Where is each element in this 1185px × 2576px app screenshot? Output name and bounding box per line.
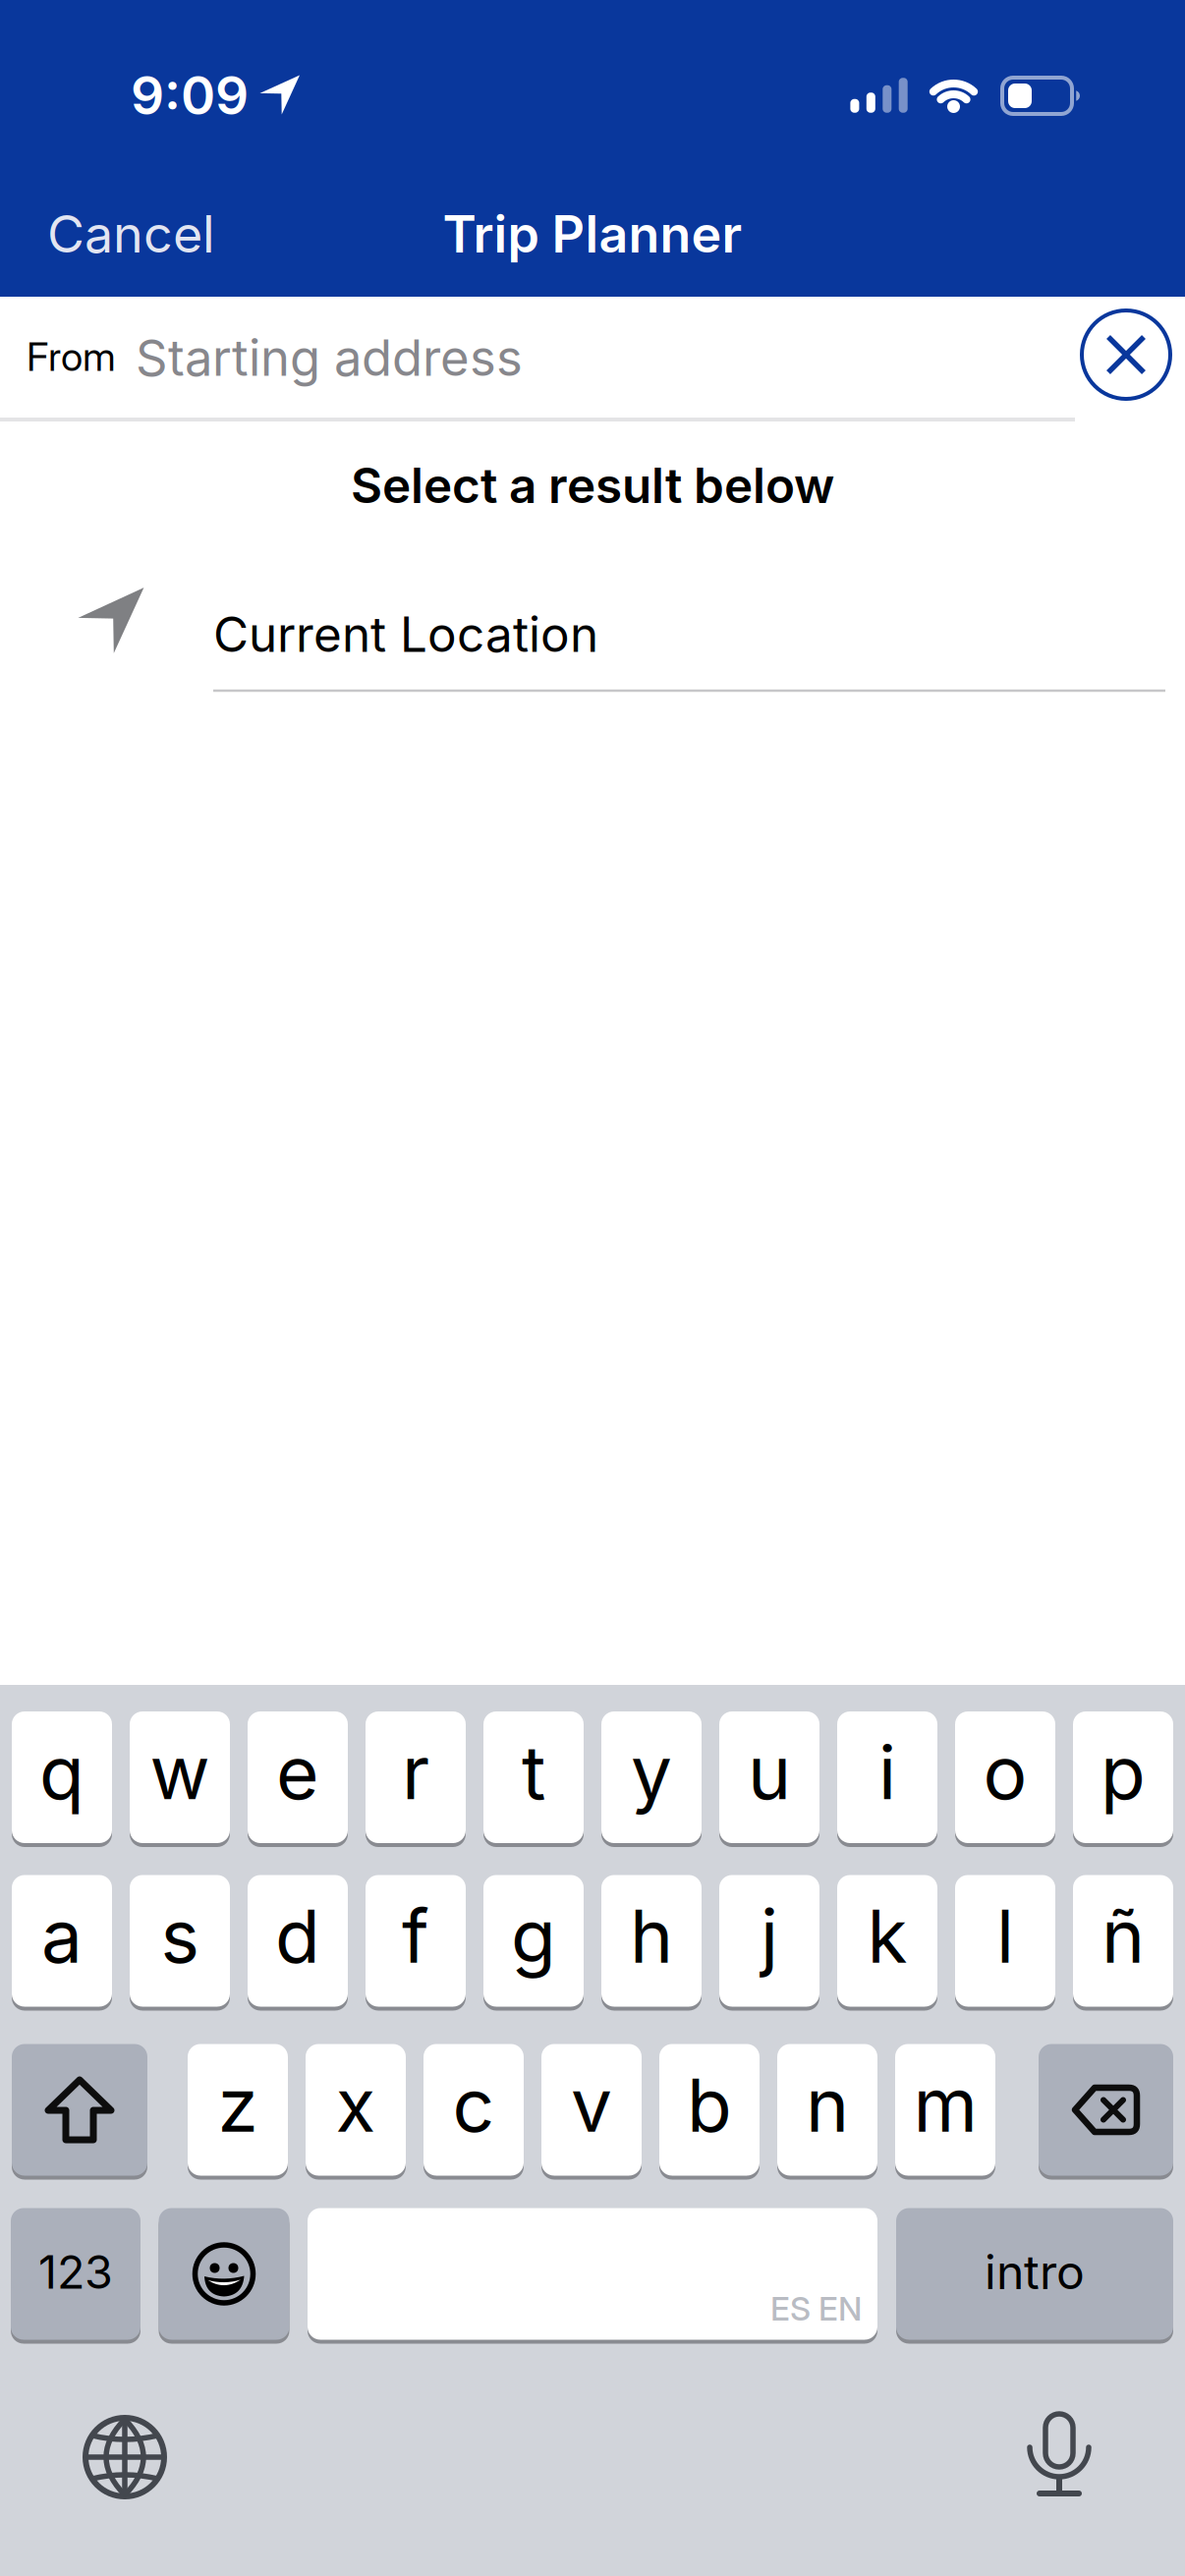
- staticText: a: [41, 1893, 83, 1979]
- staticText: s: [161, 1893, 199, 1979]
- button[interactable]: y: [601, 1711, 702, 1847]
- button[interactable]: e: [248, 1711, 348, 1847]
- staticText: y: [631, 1729, 672, 1816]
- button[interactable]: Shift: [12, 2044, 147, 2180]
- staticText: m: [913, 2062, 977, 2148]
- staticText: f: [402, 1893, 429, 1979]
- staticText: Starting address: [136, 328, 523, 387]
- button[interactable]: Current Location: [0, 560, 1185, 681]
- button[interactable]: p: [1073, 1711, 1173, 1847]
- button[interactable]: x: [306, 2044, 406, 2180]
- staticText: b: [687, 2062, 732, 2148]
- staticText: r: [402, 1729, 429, 1816]
- staticText: Current Location: [213, 606, 598, 663]
- button[interactable]: i: [837, 1711, 937, 1847]
- button[interactable]: h: [601, 1875, 702, 2011]
- button[interactable]: c: [423, 2044, 524, 2180]
- staticText: Trip Planner: [443, 204, 742, 264]
- button[interactable]: v: [541, 2044, 642, 2180]
- button[interactable]: k: [837, 1875, 937, 2011]
- staticText: d: [275, 1893, 320, 1979]
- button[interactable]: 123: [11, 2208, 141, 2344]
- staticText: Cancel: [47, 204, 215, 264]
- button[interactable]: From: [0, 297, 1061, 419]
- staticText: q: [39, 1729, 85, 1816]
- button[interactable]: w: [130, 1711, 230, 1847]
- button[interactable]: j: [719, 1875, 819, 2011]
- staticText: ñ: [1101, 1893, 1145, 1979]
- staticText: h: [630, 1893, 673, 1979]
- button[interactable]: Dictate: [1000, 2396, 1118, 2514]
- staticText: l: [996, 1893, 1014, 1979]
- button[interactable]: s: [130, 1875, 230, 2011]
- staticText: o: [983, 1729, 1027, 1816]
- staticText: ES EN: [770, 2289, 862, 2328]
- staticText: e: [276, 1729, 319, 1816]
- button[interactable]: g: [483, 1875, 584, 2011]
- staticText: 123: [38, 2245, 113, 2299]
- button[interactable]: n: [777, 2044, 877, 2180]
- button[interactable]: Next keyboard: [66, 2398, 184, 2516]
- button[interactable]: r: [366, 1711, 466, 1847]
- staticText: 9:09: [131, 64, 249, 126]
- staticText: g: [511, 1893, 556, 1979]
- staticText: w: [150, 1729, 210, 1816]
- button[interactable]: b: [659, 2044, 760, 2180]
- button[interactable]: Delete: [1039, 2044, 1173, 2180]
- button[interactable]: o: [955, 1711, 1055, 1847]
- staticText: t: [522, 1729, 545, 1816]
- staticText: v: [571, 2062, 612, 2148]
- button[interactable]: Clear text: [1077, 306, 1175, 404]
- staticText: k: [867, 1893, 907, 1979]
- button[interactable]: intro: [896, 2208, 1173, 2344]
- staticText: intro: [985, 2244, 1085, 2300]
- button[interactable]: m: [895, 2044, 995, 2180]
- button[interactable]: ñ: [1073, 1875, 1173, 2011]
- button[interactable]: d: [248, 1875, 348, 2011]
- staticText: c: [452, 2062, 495, 2148]
- button[interactable]: a: [12, 1875, 112, 2011]
- button[interactable]: u: [719, 1711, 819, 1847]
- staticText: n: [806, 2062, 849, 2148]
- staticText: From: [27, 333, 116, 380]
- button[interactable]: z: [188, 2044, 288, 2180]
- button[interactable]: f: [366, 1875, 466, 2011]
- staticText: u: [748, 1729, 791, 1816]
- button[interactable]: Cancel: [47, 204, 362, 264]
- button[interactable]: Space: [308, 2208, 877, 2344]
- staticText: z: [218, 2062, 258, 2148]
- staticText: x: [336, 2062, 376, 2148]
- button[interactable]: Emoji: [159, 2208, 289, 2344]
- staticText: i: [878, 1729, 896, 1816]
- staticText: Select a result below: [351, 457, 834, 514]
- button[interactable]: t: [483, 1711, 584, 1847]
- staticText: p: [1100, 1729, 1146, 1816]
- staticText: j: [761, 1893, 778, 1979]
- button[interactable]: l: [955, 1875, 1055, 2011]
- button[interactable]: q: [12, 1711, 112, 1847]
